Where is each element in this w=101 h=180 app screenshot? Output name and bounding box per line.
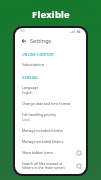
button[interactable]: Back <box>19 36 28 45</box>
staticText: Settings <box>30 37 52 45</box>
staticText: Language <box>22 85 39 90</box>
staticText: Manage included folders <box>22 128 63 133</box>
staticText: Local <box>22 118 30 122</box>
staticText: Change date and time format <box>22 101 71 106</box>
button[interactable]: Show hidden items <box>15 147 86 158</box>
button[interactable]: Search all files instead of folders in t… <box>15 158 86 173</box>
button[interactable]: Manage excluded folders <box>15 136 86 147</box>
button[interactable]: Subscriptions <box>15 59 86 70</box>
button[interactable]: Language <box>15 82 86 98</box>
staticText: English <box>22 91 33 95</box>
staticText: 9:41 <box>20 29 26 33</box>
staticText: GENERAL <box>22 75 39 80</box>
staticText: Manage excluded folders <box>22 139 64 144</box>
staticText: Show hidden items <box>22 150 54 155</box>
staticText: ONLINE CONTENT <box>22 52 55 57</box>
staticText: Subscriptions <box>22 62 45 67</box>
staticText: Flexible <box>32 8 70 21</box>
staticText: Search all files instead of folders in t… <box>22 161 74 170</box>
button[interactable]: Manage included folders <box>15 125 86 136</box>
staticText: File handling priority <box>22 112 56 117</box>
button[interactable]: Change date and time format <box>15 98 86 109</box>
button[interactable]: File handling priority <box>15 109 86 125</box>
